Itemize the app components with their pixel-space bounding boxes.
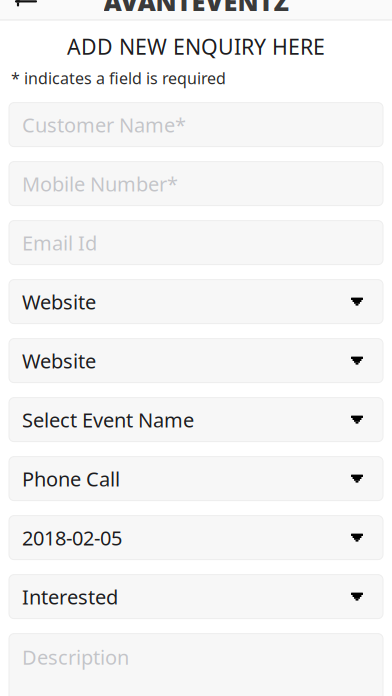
button[interactable]: Website — [9, 280, 383, 324]
staticText: * indicates a field is required — [11, 67, 226, 89]
button[interactable]: Website — [9, 339, 383, 383]
button[interactable]: Interested — [9, 575, 383, 619]
button[interactable]: Description — [9, 634, 383, 696]
staticText: Interested — [22, 583, 118, 610]
staticText: Phone Call — [22, 465, 120, 492]
button[interactable]: 2018-02-05 — [9, 516, 383, 560]
button[interactable]: Phone Call — [9, 457, 383, 501]
staticText: Mobile Number* — [22, 170, 178, 197]
staticText: Website — [22, 347, 96, 374]
staticText: Email Id — [22, 229, 97, 256]
button[interactable]: Select Event Name — [9, 398, 383, 442]
staticText: Description — [22, 644, 129, 670]
button[interactable]: Email Id — [9, 221, 383, 265]
staticText: ADD NEW ENQUIRY HERE — [67, 32, 325, 60]
button[interactable]: Mobile Number* — [9, 162, 383, 206]
button[interactable]: Back — [0, 0, 52, 20]
staticText: 2018-02-05 — [22, 524, 122, 551]
staticText: Select Event Name — [22, 406, 194, 433]
staticText: Customer Name* — [22, 111, 186, 138]
button[interactable]: Customer Name* — [9, 103, 383, 147]
staticText: AVANTEVENTZ — [103, 0, 288, 18]
staticText: Website — [22, 288, 96, 315]
